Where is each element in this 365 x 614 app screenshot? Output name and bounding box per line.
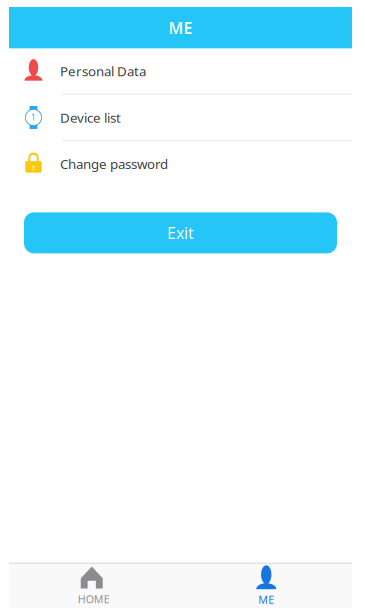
button[interactable]: Personal Data [9, 49, 352, 94]
staticText: Exit [167, 222, 194, 243]
staticText: HOME [78, 592, 110, 606]
button[interactable]: 1 [9, 95, 352, 140]
staticText: Personal Data [60, 62, 146, 80]
button[interactable]: Exit [24, 212, 337, 253]
staticText: 1 [31, 112, 36, 123]
staticText: ME [258, 592, 274, 607]
staticText: Device list [60, 109, 121, 126]
button[interactable]: ME [180, 564, 352, 608]
button[interactable]: Change password [9, 141, 352, 186]
staticText: ME [168, 17, 192, 38]
button[interactable]: HOME [9, 564, 180, 608]
staticText: Change password [60, 155, 168, 173]
